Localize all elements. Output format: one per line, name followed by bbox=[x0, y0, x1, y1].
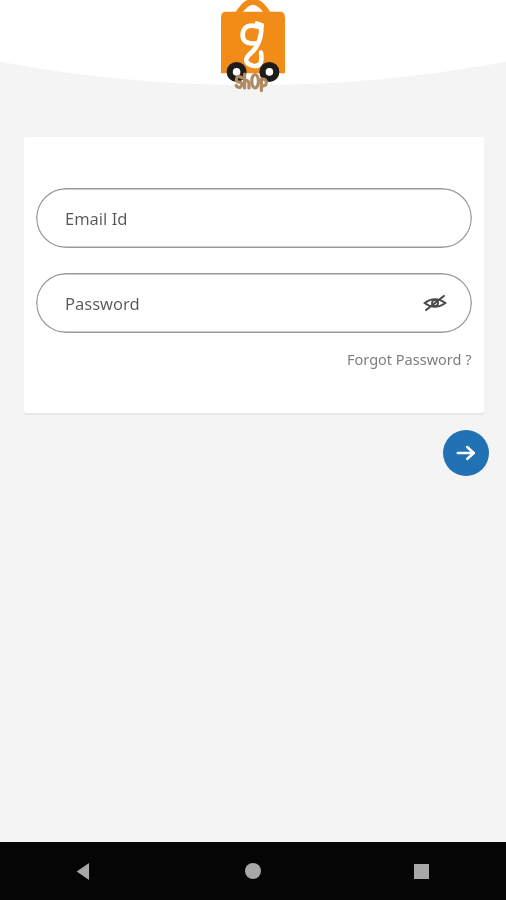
staticText: Forgot Password ? bbox=[347, 349, 472, 369]
staticText: Email Id bbox=[65, 207, 128, 229]
button[interactable]: Forgot Password ? bbox=[341, 343, 478, 375]
button[interactable]: Sign in bbox=[443, 430, 489, 476]
button[interactable]: Password bbox=[36, 273, 472, 333]
button[interactable]: Email Id bbox=[36, 188, 472, 248]
button[interactable]: Back bbox=[0, 842, 168, 900]
button[interactable]: Recents bbox=[337, 842, 506, 900]
button[interactable]: Toggle password visibility bbox=[420, 288, 450, 318]
button[interactable]: Home bbox=[168, 842, 337, 900]
staticText: Password bbox=[65, 292, 140, 314]
